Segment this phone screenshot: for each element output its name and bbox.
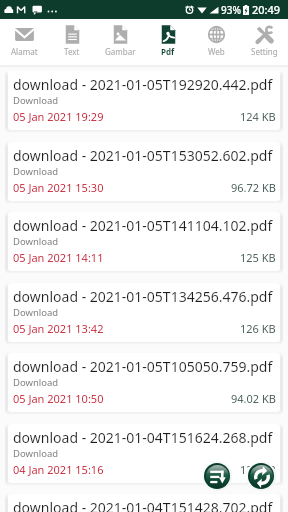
button[interactable]: download - 2021-01-05T134256.476.pdf [8,283,280,342]
staticText: download - 2021-01-05T141104.102.pdf [13,216,273,235]
staticText: 05 Jan 2021 15:30 [13,180,104,195]
staticText: download - 2021-01-05T105050.759.pdf [13,357,273,376]
button[interactable]: download - 2021-01-05T141104.102.pdf [8,212,280,271]
staticText: 96.72 KB [231,180,276,195]
staticText: 05 Jan 2021 14:11 [13,250,104,265]
staticText: 93% [221,3,241,17]
staticText: Download [13,306,59,319]
button[interactable]: Alamat [0,19,48,66]
button[interactable]: Download all [202,461,232,491]
staticText: Web [208,46,225,57]
staticText: Alamat [11,46,38,57]
staticText: Setting [251,46,278,57]
button[interactable]: Pdf [144,19,192,66]
button[interactable]: download - 2021-01-05T153052.602.pdf [8,142,280,201]
staticText: 04 Jan 2021 15:16 [13,462,104,477]
staticText: Download [13,94,59,107]
staticText: 125 KB [240,462,276,477]
staticText: 126 KB [240,321,276,336]
staticText: 125 KB [240,250,276,265]
staticText: Download [13,235,59,248]
staticText: 20:49 [252,2,281,17]
staticText: download - 2021-01-05T134256.476.pdf [13,287,273,306]
staticText: Download [13,376,59,389]
button[interactable]: Setting [240,19,288,66]
button[interactable]: Refresh [246,461,276,491]
staticText: 05 Jan 2021 19:29 [13,109,104,124]
staticText: download - 2021-01-05T192920.442.pdf [13,75,273,94]
staticText: Download [13,165,59,178]
staticText: Download [13,447,59,460]
staticText: 05 Jan 2021 13:42 [13,321,104,336]
staticText: 94.02 KB [231,391,276,406]
button[interactable]: Gambar [96,19,144,66]
staticText: Pdf [161,46,175,57]
staticText: 05 Jan 2021 10:50 [13,391,104,406]
staticText: download - 2021-01-04T151624.268.pdf [13,428,273,447]
staticText: 124 KB [240,109,276,124]
button[interactable]: download - 2021-01-04T151428.702.pdf [8,494,280,512]
button[interactable]: Text [48,19,96,66]
staticText: Text [64,46,80,57]
button[interactable]: Web [192,19,240,66]
staticText: download - 2021-01-05T153052.602.pdf [13,146,273,165]
button[interactable]: download - 2021-01-04T151624.268.pdf [8,424,280,483]
staticText: Gambar [105,46,136,57]
staticText: download - 2021-01-04T151428.702.pdf [13,498,273,512]
button[interactable]: download - 2021-01-05T105050.759.pdf [8,353,280,412]
button[interactable]: download - 2021-01-05T192920.442.pdf [8,71,280,130]
